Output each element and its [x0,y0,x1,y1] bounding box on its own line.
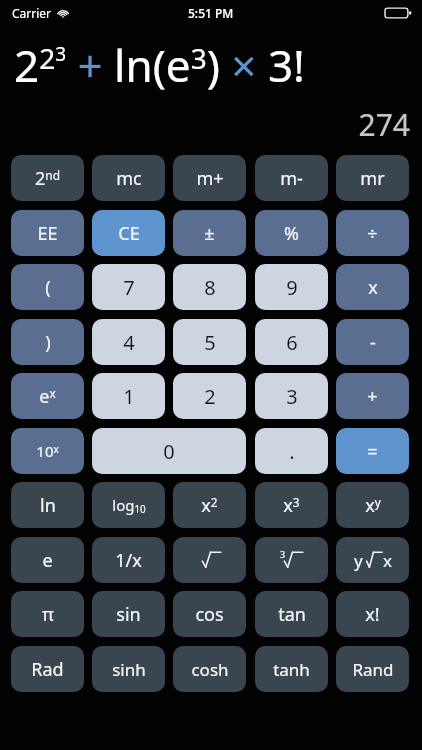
staticText: 3 [280,548,286,560]
button[interactable]: 4 [92,319,165,365]
staticText: sinh [112,658,146,681]
button[interactable]: CE [92,210,165,256]
button[interactable]: + [336,373,409,419]
button[interactable]: % [255,210,328,256]
button[interactable]: 3 [255,537,328,583]
button[interactable]: 2nd [11,155,84,201]
button[interactable]: 9 [255,264,328,310]
button[interactable]: y [336,537,409,583]
staticText: ± [204,221,215,246]
button[interactable]: ± [173,210,246,256]
button[interactable]: x [336,264,409,310]
staticText: 0 [163,438,175,465]
button[interactable]: 7 [92,264,165,310]
button[interactable]: m+ [173,155,246,201]
staticText: mr [360,166,385,191]
staticText: . [289,438,295,465]
button[interactable]: π [11,591,84,637]
staticText: mc [116,166,142,191]
staticText: ) [45,330,51,355]
button[interactable]: = [336,428,409,474]
staticText: x2 [201,493,218,518]
staticText: ÷ [367,221,378,246]
button[interactable]: 0 [92,428,246,474]
button[interactable]: x2 [173,482,246,528]
staticText: tan [278,602,306,627]
staticText: e [42,548,53,573]
staticText: CE [118,221,140,246]
button[interactable]: . [255,428,328,474]
staticText: y [354,549,363,572]
staticText: 8 [204,274,216,301]
button[interactable]: EE [11,210,84,256]
staticText: 1 [123,383,135,410]
button[interactable]: 8 [173,264,246,310]
button[interactable]: tan [255,591,328,637]
button[interactable]: x! [336,591,409,637]
button[interactable]: ÷ [336,210,409,256]
button[interactable]: 1/x [92,537,165,583]
button[interactable]: log10 [92,482,165,528]
button[interactable]: - [336,319,409,365]
staticText: 2nd [35,166,60,191]
staticText: % [284,221,299,246]
button[interactable]: ) [11,319,84,365]
button[interactable]: Rand [336,646,409,692]
staticText: x [368,275,378,300]
button[interactable]: cos [173,591,246,637]
button[interactable]: 3 [255,373,328,419]
staticText: tanh [273,658,310,681]
staticText: Rand [352,658,394,681]
button[interactable]: ( [11,264,84,310]
button[interactable]: 10x [11,428,84,474]
staticText: x! [365,602,380,627]
staticText: Rad [31,657,64,682]
staticText: x [383,549,392,572]
button[interactable]: mr [336,155,409,201]
button[interactable]: x3 [255,482,328,528]
staticText: 4 [123,329,135,356]
staticText: cos [195,602,224,627]
staticText: 7 [123,274,135,301]
button[interactable]: 1 [92,373,165,419]
button[interactable]: ln [11,482,84,528]
button[interactable]: tanh [255,646,328,692]
button[interactable]: 2 [173,373,246,419]
staticText: 3 [286,383,298,410]
button[interactable]: 6 [255,319,328,365]
staticText: sin [116,602,141,627]
staticText: 6 [286,329,298,356]
staticText: 1/x [115,548,142,573]
button[interactable]: m- [255,155,328,201]
staticText: 5:51 PM [188,5,234,21]
staticText: - [370,330,376,355]
button[interactable] [173,537,246,583]
staticText: ( [45,275,51,300]
button[interactable]: 5 [173,319,246,365]
staticText: ln [40,493,56,518]
staticText: 10x [36,441,59,461]
staticText: m+ [196,166,224,191]
staticText: Carrier [12,5,52,21]
staticText: 2 [204,383,216,410]
button[interactable]: Rad [11,646,84,692]
staticText: = [367,439,378,464]
staticText: xy [365,493,381,518]
button[interactable]: xy [336,482,409,528]
staticText: π [42,602,54,627]
button[interactable]: mc [92,155,165,201]
button[interactable]: e [11,537,84,583]
staticText: EE [37,221,58,246]
button[interactable]: cosh [173,646,246,692]
staticText: 9 [286,274,298,301]
staticText: log10 [112,495,146,516]
staticText: cosh [191,658,229,681]
staticText: 274 [358,104,410,145]
button[interactable]: sinh [92,646,165,692]
staticText: + [367,384,378,409]
staticText: ex [39,384,56,409]
button[interactable]: sin [92,591,165,637]
staticText: m- [280,166,303,191]
button[interactable]: ex [11,373,84,419]
staticText: 5 [204,329,216,356]
